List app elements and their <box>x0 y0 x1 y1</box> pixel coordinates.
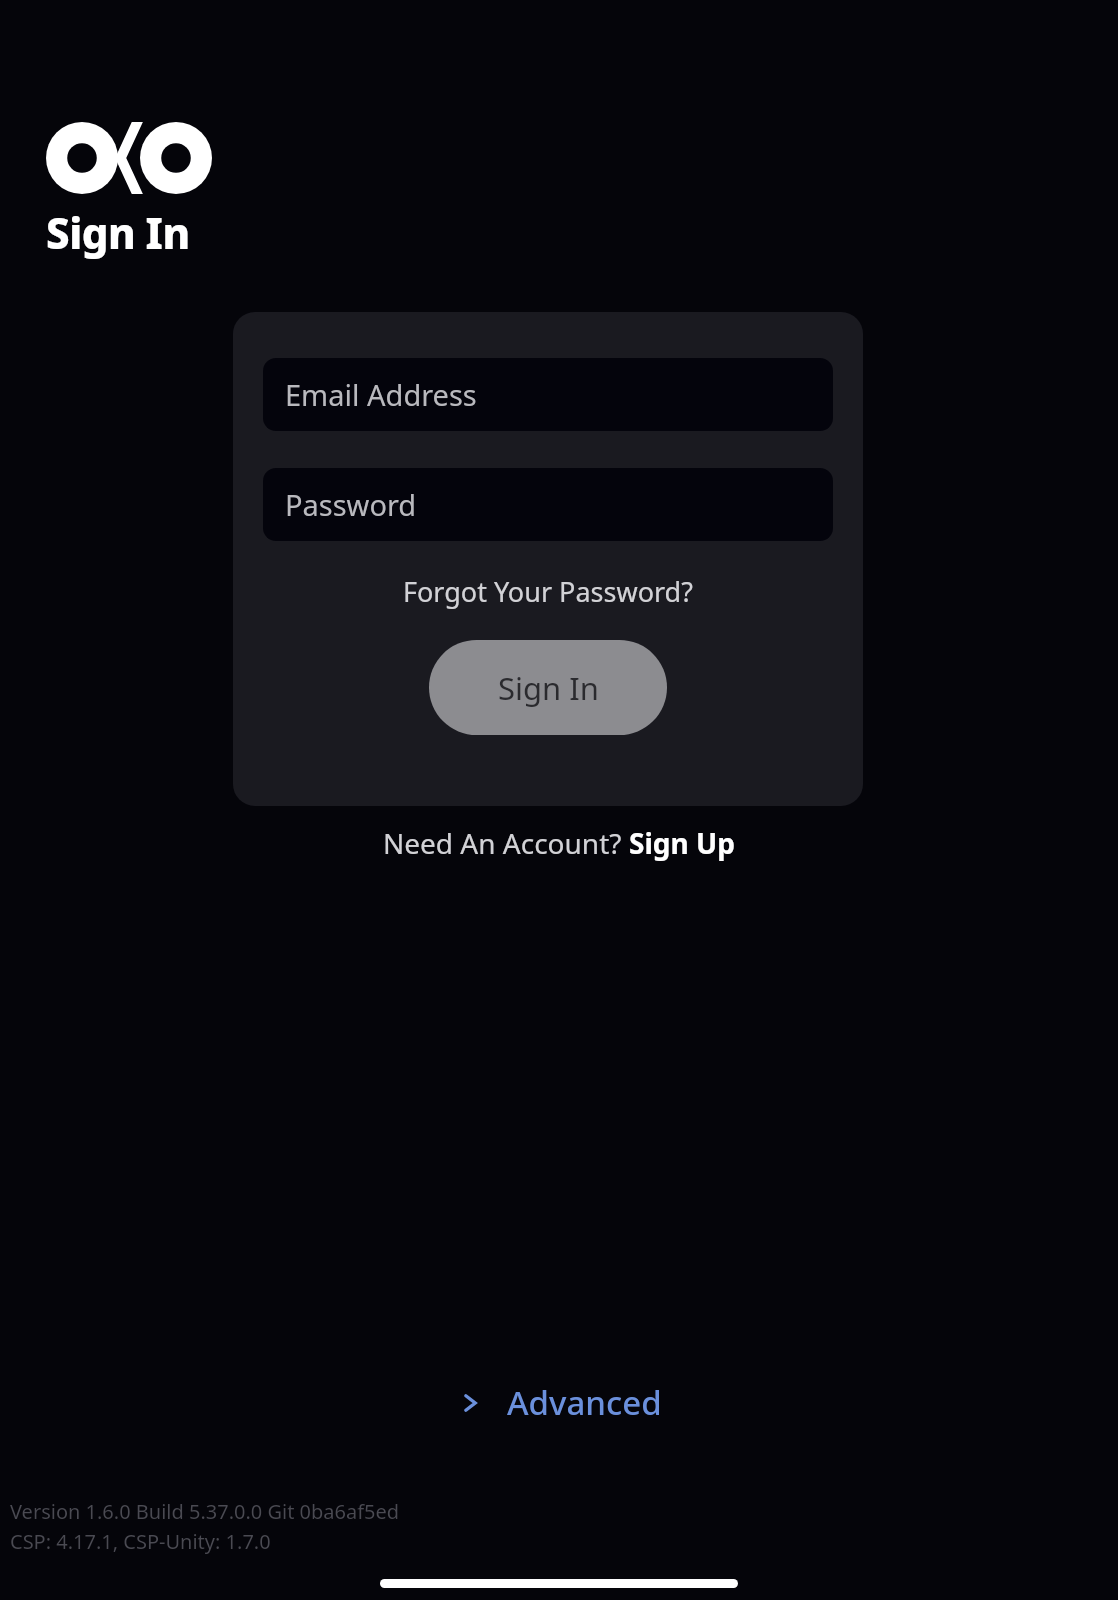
staticText: Advanced <box>507 1380 662 1425</box>
staticText: Password <box>285 485 417 524</box>
staticText: Need An Account? <box>383 824 629 862</box>
button[interactable]: Need An Account? <box>379 818 739 868</box>
staticText: CSP: 4.17.1, CSP-Unity: 1.7.0 <box>10 1528 271 1555</box>
staticText: Email Address <box>285 375 477 414</box>
other: OKO logo <box>46 122 212 194</box>
staticText: Sign In <box>46 204 190 261</box>
button[interactable]: Password <box>263 468 833 541</box>
staticText: Sign In <box>498 667 599 709</box>
staticText: Sign Up <box>629 824 735 862</box>
button[interactable]: Sign In <box>429 640 667 735</box>
button[interactable]: Forgot Your Password? <box>233 565 863 618</box>
staticText: Forgot Your Password? <box>403 573 693 610</box>
button[interactable]: Email Address <box>263 358 833 431</box>
staticText: Version 1.6.0 Build 5.37.0.0 Git 0ba6af5… <box>10 1498 400 1525</box>
button[interactable]: Advanced settings <box>445 1372 674 1433</box>
